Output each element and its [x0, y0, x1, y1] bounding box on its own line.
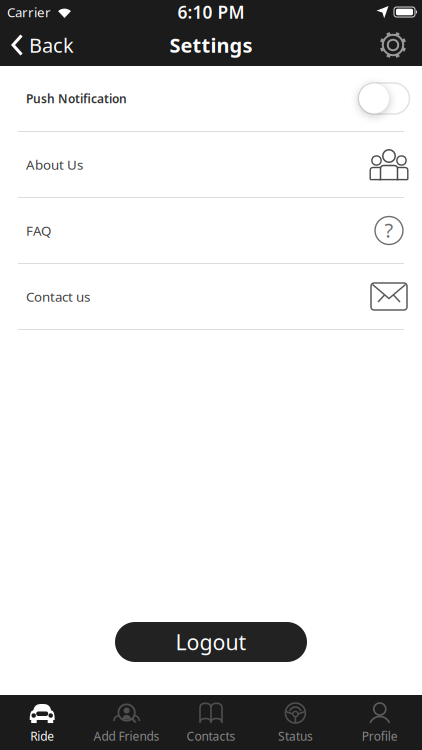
button[interactable]: Status	[253, 695, 338, 750]
staticText: Back	[29, 32, 74, 58]
staticText: Contacts	[186, 728, 235, 744]
button[interactable]: Contacts	[169, 695, 253, 750]
button[interactable]: Contact us	[0, 264, 422, 329]
button[interactable]: Settings	[378, 30, 422, 60]
staticText: Contact us	[26, 288, 90, 305]
staticText: Logout	[175, 628, 246, 656]
button[interactable]: Logout	[115, 622, 307, 662]
staticText: About Us	[26, 156, 83, 173]
staticText: Profile	[362, 728, 398, 744]
staticText: Status	[278, 728, 313, 744]
button[interactable]: Push Notification	[0, 66, 422, 131]
staticText: ?	[384, 217, 393, 243]
staticText: Carrier	[7, 3, 51, 21]
staticText: Settings	[169, 32, 252, 58]
staticText: Add Friends	[94, 728, 160, 744]
staticText: Push Notification	[26, 90, 127, 106]
staticText: Ride	[30, 728, 54, 744]
button[interactable]: FAQ	[0, 198, 422, 263]
button[interactable]: Profile	[338, 695, 422, 750]
button[interactable]: Add Friends	[84, 695, 169, 750]
button[interactable]: Ride	[0, 695, 84, 750]
staticText: 6:10 PM	[177, 0, 244, 23]
staticText: FAQ	[26, 222, 51, 239]
button[interactable]: About Us	[0, 132, 422, 197]
button[interactable]: Back	[0, 32, 74, 58]
